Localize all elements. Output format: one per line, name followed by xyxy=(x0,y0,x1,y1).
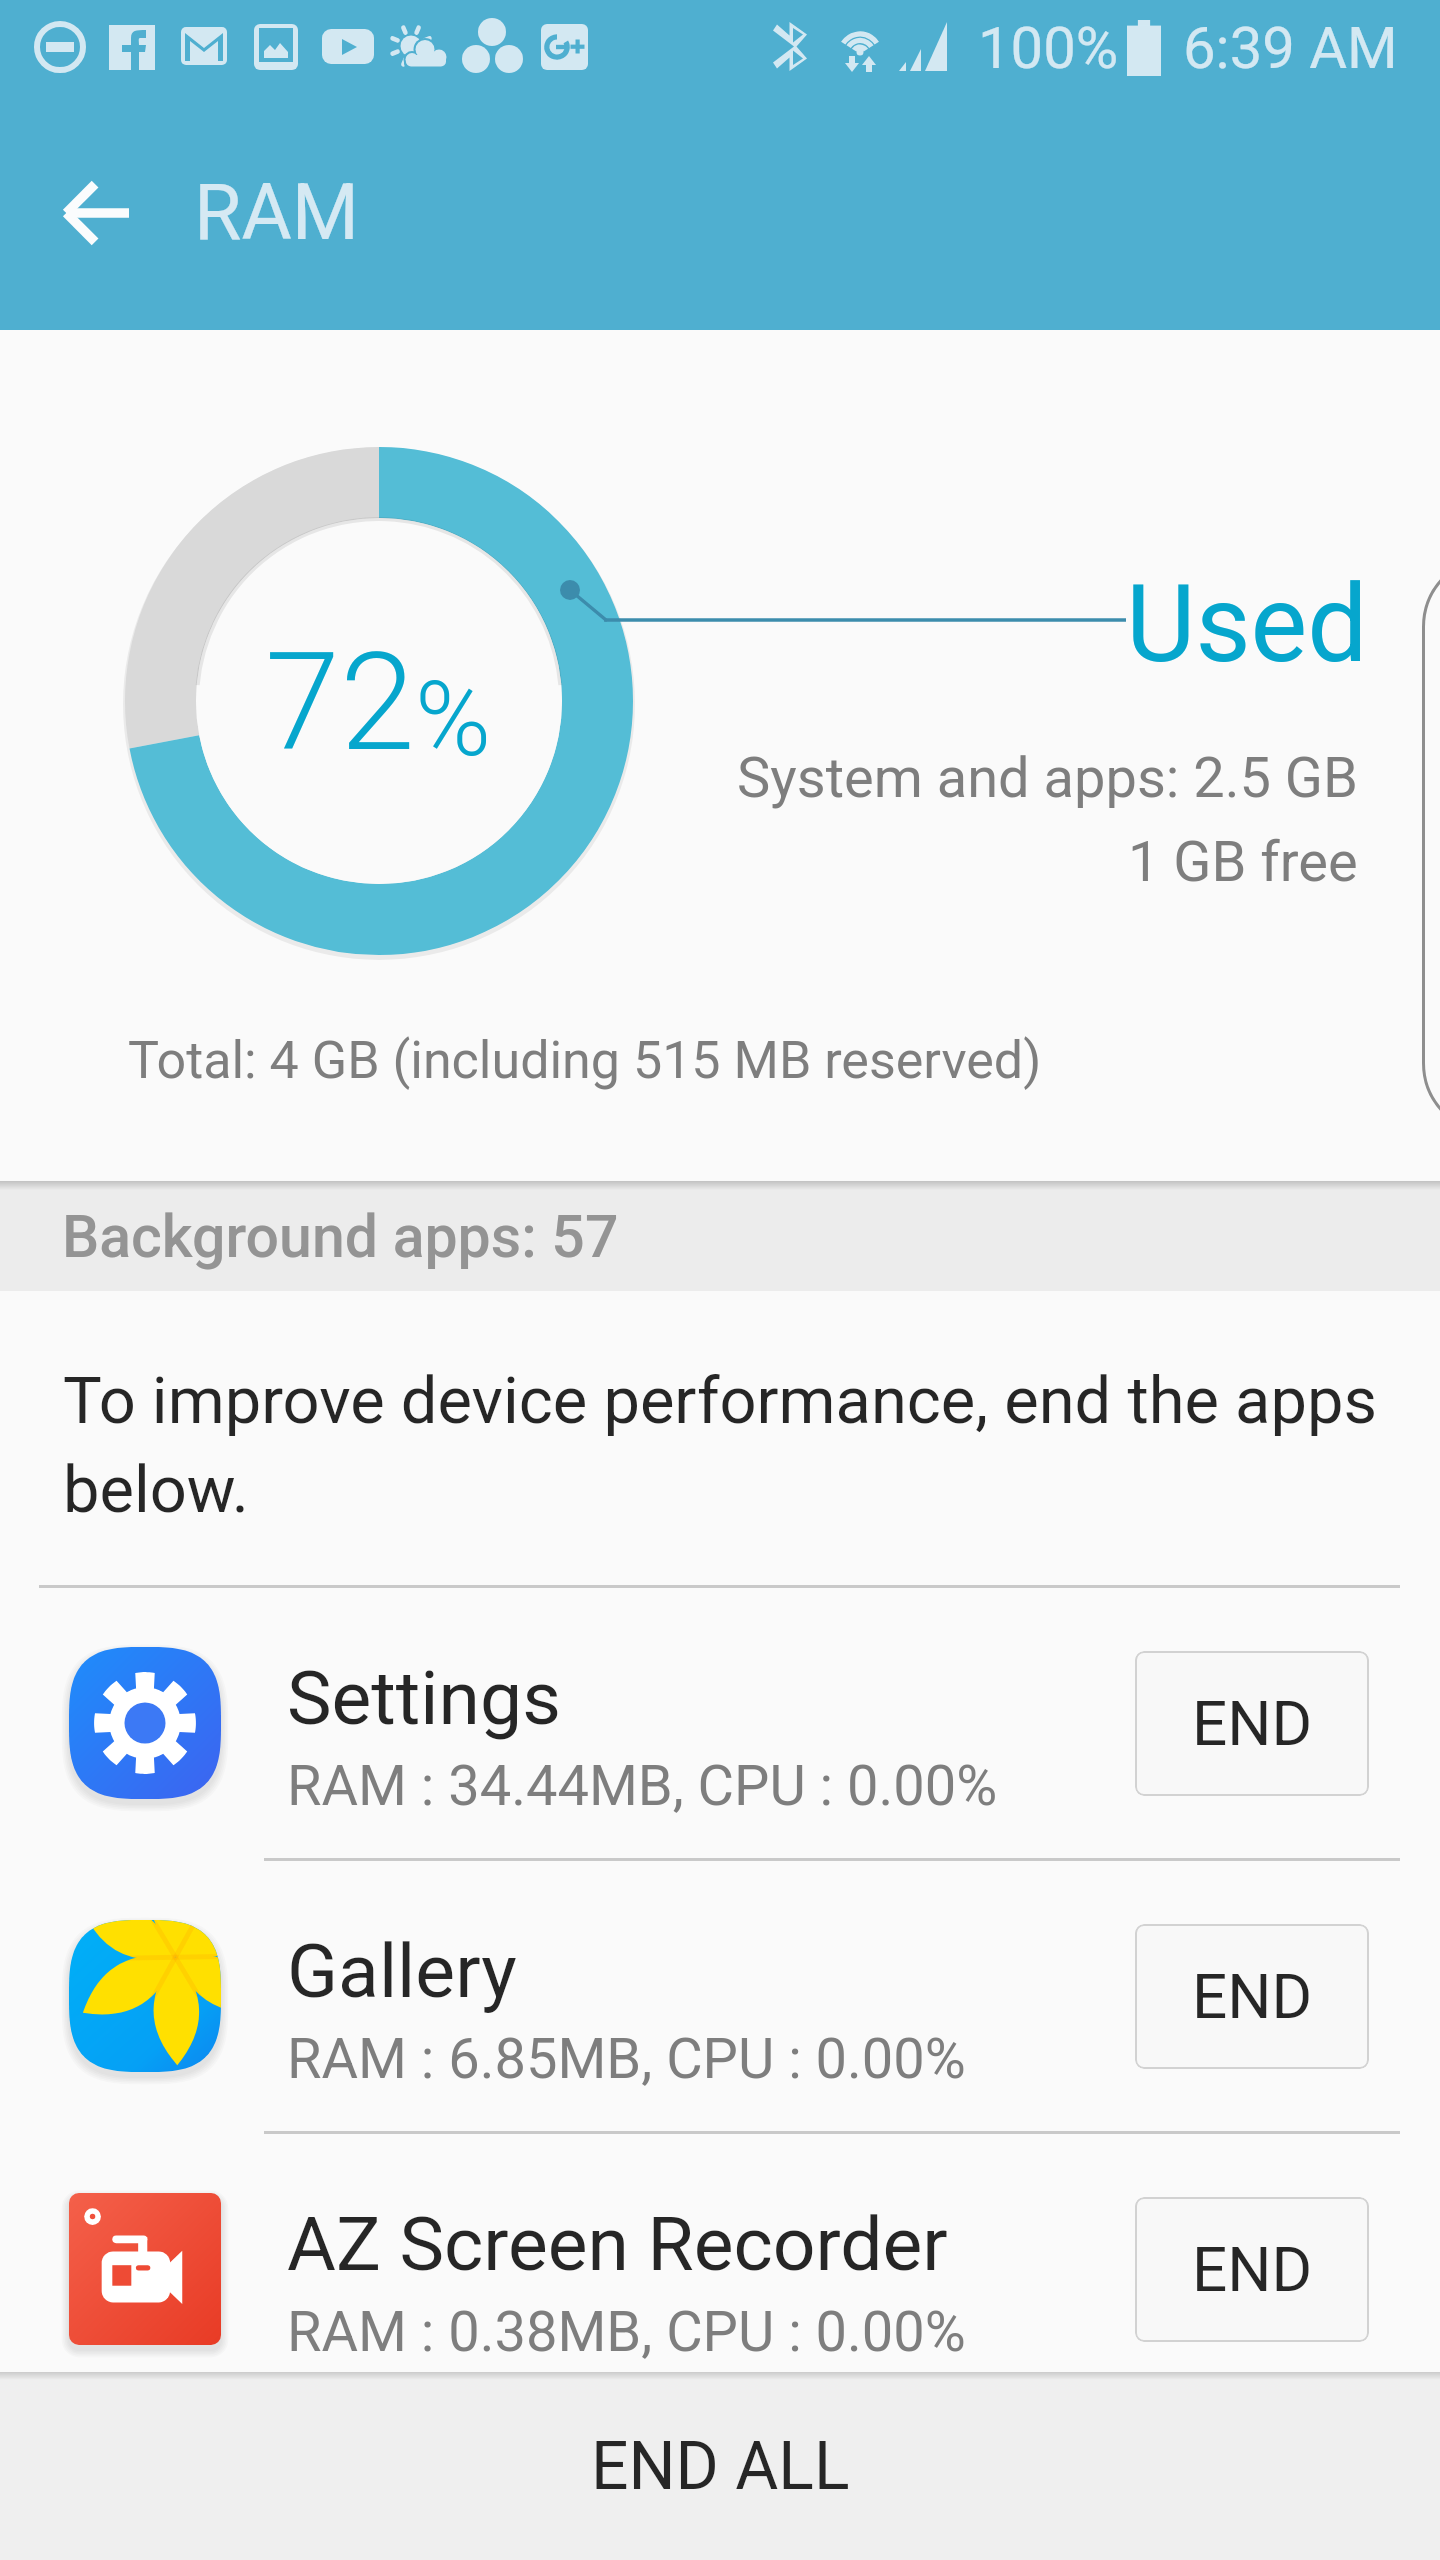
button[interactable]: END xyxy=(1135,2197,1369,2342)
staticText: System and apps: 2.5 GB xyxy=(737,745,1358,811)
button[interactable]: AZ Screen Recorder xyxy=(0,2134,1440,2404)
button[interactable]: Clean now xyxy=(1422,555,1440,1135)
staticText: AZ Screen Recorder xyxy=(287,2200,948,2288)
staticText: Gallery xyxy=(287,1927,517,2015)
staticText: Total: 4 GB (including 515 MB reserved) xyxy=(128,1030,1042,1091)
staticText: END xyxy=(1192,1687,1313,1760)
staticText: Background apps: 57 xyxy=(62,1202,619,1271)
button[interactable]: Settings xyxy=(0,1588,1440,1858)
button[interactable]: END ALL xyxy=(0,2372,1440,2560)
staticText: Settings xyxy=(287,1654,561,1742)
staticText: END xyxy=(1192,2233,1313,2306)
staticText: 1 GB free xyxy=(1128,829,1358,895)
staticText: 6:39 AM xyxy=(1183,14,1398,82)
staticText: Used xyxy=(1126,562,1368,687)
staticText: RAM xyxy=(194,168,359,258)
button[interactable]: Navigate up xyxy=(37,153,157,273)
staticText: 72 xyxy=(265,624,415,782)
staticText: RAM : 0.38MB, CPU : 0.00% xyxy=(287,2299,966,2365)
staticText: 100% xyxy=(978,14,1119,82)
staticText: RAM : 6.85MB, CPU : 0.00% xyxy=(287,2026,966,2092)
staticText: RAM : 34.44MB, CPU : 0.00% xyxy=(287,1753,998,1819)
staticText: END xyxy=(1192,1960,1313,2033)
button[interactable]: Gallery xyxy=(0,1861,1440,2131)
staticText: END ALL xyxy=(591,2428,850,2505)
staticText: To improve device performance, end the a… xyxy=(63,1363,1414,1528)
staticText: % xyxy=(415,659,492,780)
button[interactable]: END xyxy=(1135,1651,1369,1796)
button[interactable]: END xyxy=(1135,1924,1369,2069)
